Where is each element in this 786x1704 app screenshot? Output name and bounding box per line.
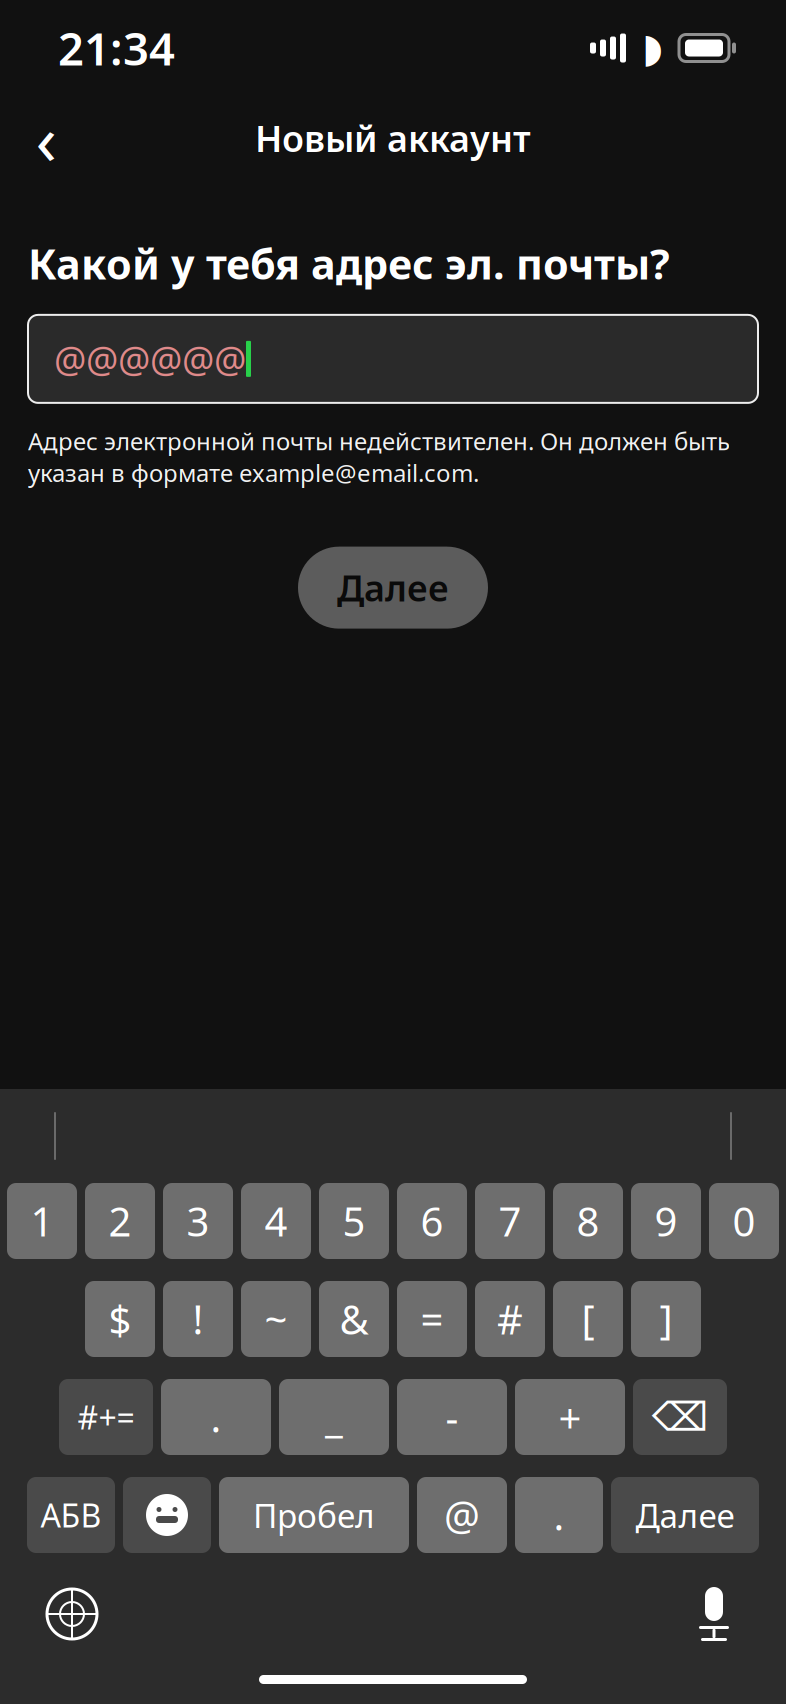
staticText: . xyxy=(553,1488,564,1541)
button[interactable]: 8 xyxy=(553,1183,623,1259)
staticText: 1 xyxy=(30,1194,53,1247)
staticText: 3 xyxy=(186,1194,209,1247)
button[interactable]: @ xyxy=(417,1477,507,1553)
staticText: 5 xyxy=(342,1194,365,1247)
button[interactable]: Dictation xyxy=(674,1574,754,1654)
button[interactable]: . xyxy=(161,1379,271,1455)
staticText: # xyxy=(497,1292,523,1345)
staticText: = xyxy=(420,1292,443,1345)
staticText: 4 xyxy=(264,1194,287,1247)
button[interactable]: Далее xyxy=(298,547,488,629)
staticText: Новый аккаунт xyxy=(255,114,531,162)
staticText: 7 xyxy=(498,1194,521,1247)
staticText: & xyxy=(339,1292,368,1345)
button[interactable]: 9 xyxy=(631,1183,701,1259)
button[interactable]: Emoji xyxy=(123,1477,211,1553)
button[interactable]: $ xyxy=(85,1281,155,1357)
staticText: 2 xyxy=(108,1194,131,1247)
button[interactable]: & xyxy=(319,1281,389,1357)
staticText: АБВ xyxy=(40,1494,101,1536)
button[interactable]: + xyxy=(515,1379,625,1455)
staticText: + xyxy=(558,1390,581,1443)
button[interactable]: Далее xyxy=(611,1477,759,1553)
staticText: $ xyxy=(108,1292,131,1345)
staticText: 21:34 xyxy=(58,18,175,78)
button[interactable]: 4 xyxy=(241,1183,311,1259)
button[interactable]: 3 xyxy=(163,1183,233,1259)
staticText: ! xyxy=(192,1292,203,1345)
staticText: . xyxy=(210,1390,221,1443)
staticText: Пробел xyxy=(253,1493,375,1537)
staticText: @ xyxy=(444,1488,480,1541)
button[interactable]: ! xyxy=(163,1281,233,1357)
button[interactable]: Switch keyboard xyxy=(32,1574,112,1654)
button[interactable]: 0 xyxy=(709,1183,779,1259)
button[interactable]: Back xyxy=(10,106,82,170)
button[interactable]: - xyxy=(397,1379,507,1455)
staticText: 6 xyxy=(420,1194,443,1247)
staticText: @@@@@@ xyxy=(54,335,246,383)
staticText: ~ xyxy=(264,1292,287,1345)
staticText: ⌫ xyxy=(651,1394,708,1440)
button[interactable]: ~ xyxy=(241,1281,311,1357)
staticText: ‹ xyxy=(35,92,56,184)
button[interactable]: 5 xyxy=(319,1183,389,1259)
button[interactable]: . xyxy=(515,1477,603,1553)
staticText: - xyxy=(445,1390,458,1443)
staticText: 9 xyxy=(654,1194,677,1247)
button[interactable]: @@@@@@ xyxy=(28,315,758,403)
staticText: Далее xyxy=(337,564,449,611)
staticText: 0 xyxy=(732,1194,755,1247)
button[interactable]: 2 xyxy=(85,1183,155,1259)
staticText: 8 xyxy=(576,1194,599,1247)
staticText: Адрес электронной почты недействителен. … xyxy=(28,425,730,489)
button[interactable]: АБВ xyxy=(27,1477,115,1553)
button[interactable]: ] xyxy=(631,1281,701,1357)
button[interactable]: _ xyxy=(279,1379,389,1455)
button[interactable]: 6 xyxy=(397,1183,467,1259)
button[interactable]: Backspace xyxy=(633,1379,727,1455)
button[interactable]: #+= xyxy=(59,1379,153,1455)
button[interactable]: 7 xyxy=(475,1183,545,1259)
staticText: ] xyxy=(659,1292,672,1345)
staticText: Какой у тебя адрес эл. почты? xyxy=(28,236,670,291)
staticText: _ xyxy=(325,1390,343,1443)
staticText: Далее xyxy=(635,1493,734,1537)
button[interactable]: # xyxy=(475,1281,545,1357)
staticText: #+= xyxy=(77,1396,134,1438)
staticText: ◗ xyxy=(642,25,663,71)
button[interactable]: = xyxy=(397,1281,467,1357)
staticText: [ xyxy=(581,1292,594,1345)
button[interactable]: [ xyxy=(553,1281,623,1357)
button[interactable]: Пробел xyxy=(219,1477,409,1553)
button[interactable]: 1 xyxy=(7,1183,77,1259)
